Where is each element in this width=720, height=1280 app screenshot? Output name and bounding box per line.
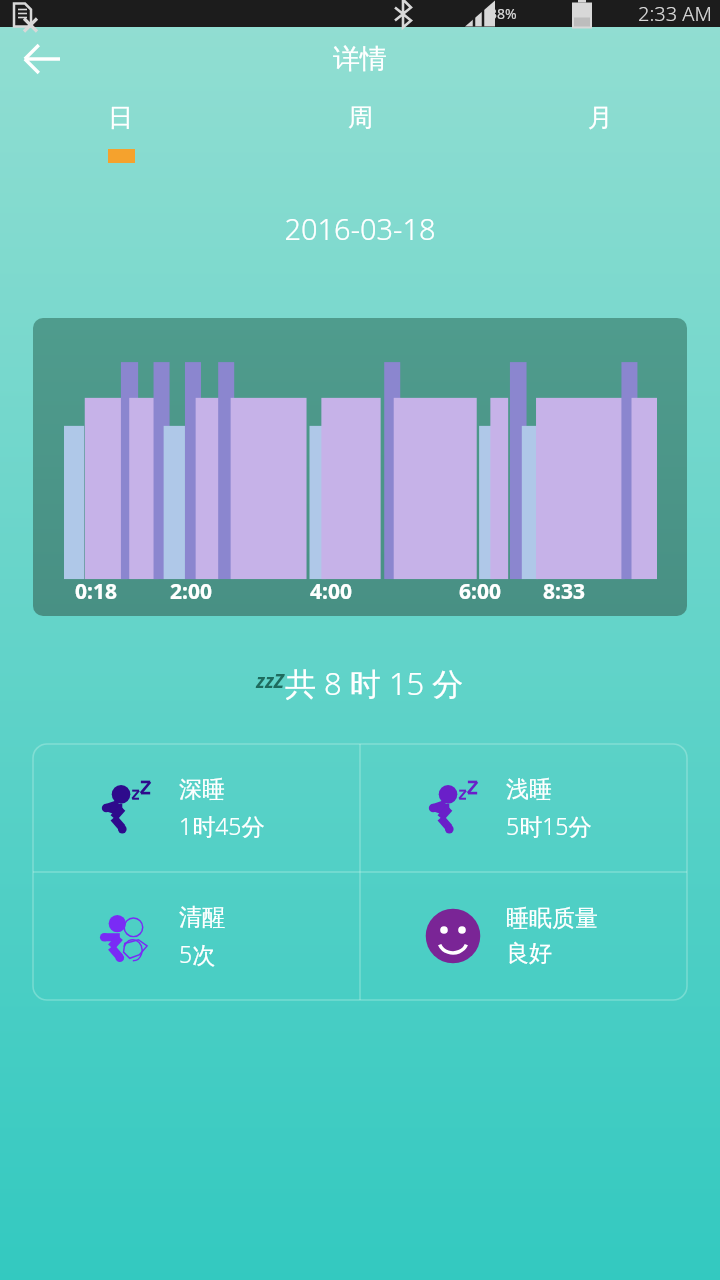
staticText: 深睡 [179,775,225,804]
button[interactable]: 浅睡 [360,744,687,872]
staticText: 2:00 [170,577,212,606]
button[interactable]: 月 [480,90,720,145]
staticText: 4:00 [310,577,352,606]
button[interactable]: 周 [240,90,480,145]
staticText: 良好 [506,939,552,968]
staticText: 睡眠质量 [506,904,598,933]
button[interactable]: Back [14,31,70,87]
staticText: 日 [108,102,133,133]
button[interactable]: 清醒 [33,872,360,1000]
staticText: 6:00 [459,577,501,606]
staticText: 周 [348,102,373,133]
staticText: 2016-03-18 [0,209,720,248]
staticText: 1时45分 [179,810,265,841]
staticText: 2:33 AM [638,0,712,27]
staticText: 5时15分 [506,810,592,841]
staticText: 5次 [179,938,216,969]
staticText: 0:18 [75,577,117,606]
button[interactable]: 日 [0,90,240,145]
button[interactable]: 睡眠质量 [360,872,687,1000]
staticText: zzZ [256,668,285,694]
staticText: 浅睡 [506,775,552,804]
staticText: 8:33 [543,577,585,606]
staticText: 月 [588,102,613,133]
staticText: 清醒 [179,903,225,932]
staticText: 38% [489,4,517,23]
button[interactable]: 深睡 [33,744,360,872]
staticText: 共 8 时 15 分 [285,662,464,704]
button[interactable]: 0:18 [33,318,687,616]
staticText: 详情 [333,42,387,76]
